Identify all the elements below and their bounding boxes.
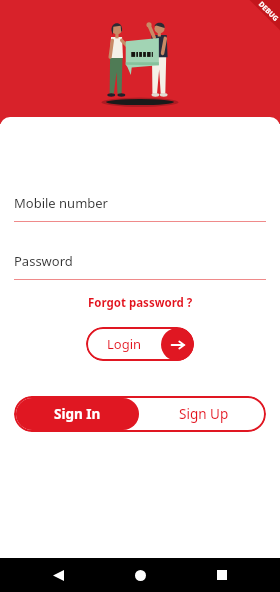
staticText: Forgot password ? bbox=[88, 295, 193, 311]
button[interactable]: Forgot password ? bbox=[82, 291, 199, 315]
button[interactable]: Sign In bbox=[16, 398, 139, 430]
button[interactable]: Mobile number bbox=[0, 194, 280, 222]
staticText: Mobile number bbox=[14, 194, 108, 212]
button[interactable]: Recents bbox=[208, 561, 236, 589]
button[interactable]: Home bbox=[126, 561, 154, 589]
staticText: Login bbox=[107, 335, 142, 353]
button[interactable]: Login bbox=[86, 327, 194, 361]
button[interactable]: Back bbox=[44, 561, 72, 589]
staticText: DEBUG bbox=[256, 0, 280, 24]
staticText: Password bbox=[14, 252, 73, 270]
button[interactable]: Sign Up bbox=[141, 396, 266, 432]
staticText: Sign In bbox=[54, 405, 101, 423]
staticText: Sign Up bbox=[179, 405, 229, 423]
button[interactable]: Password bbox=[0, 252, 280, 280]
